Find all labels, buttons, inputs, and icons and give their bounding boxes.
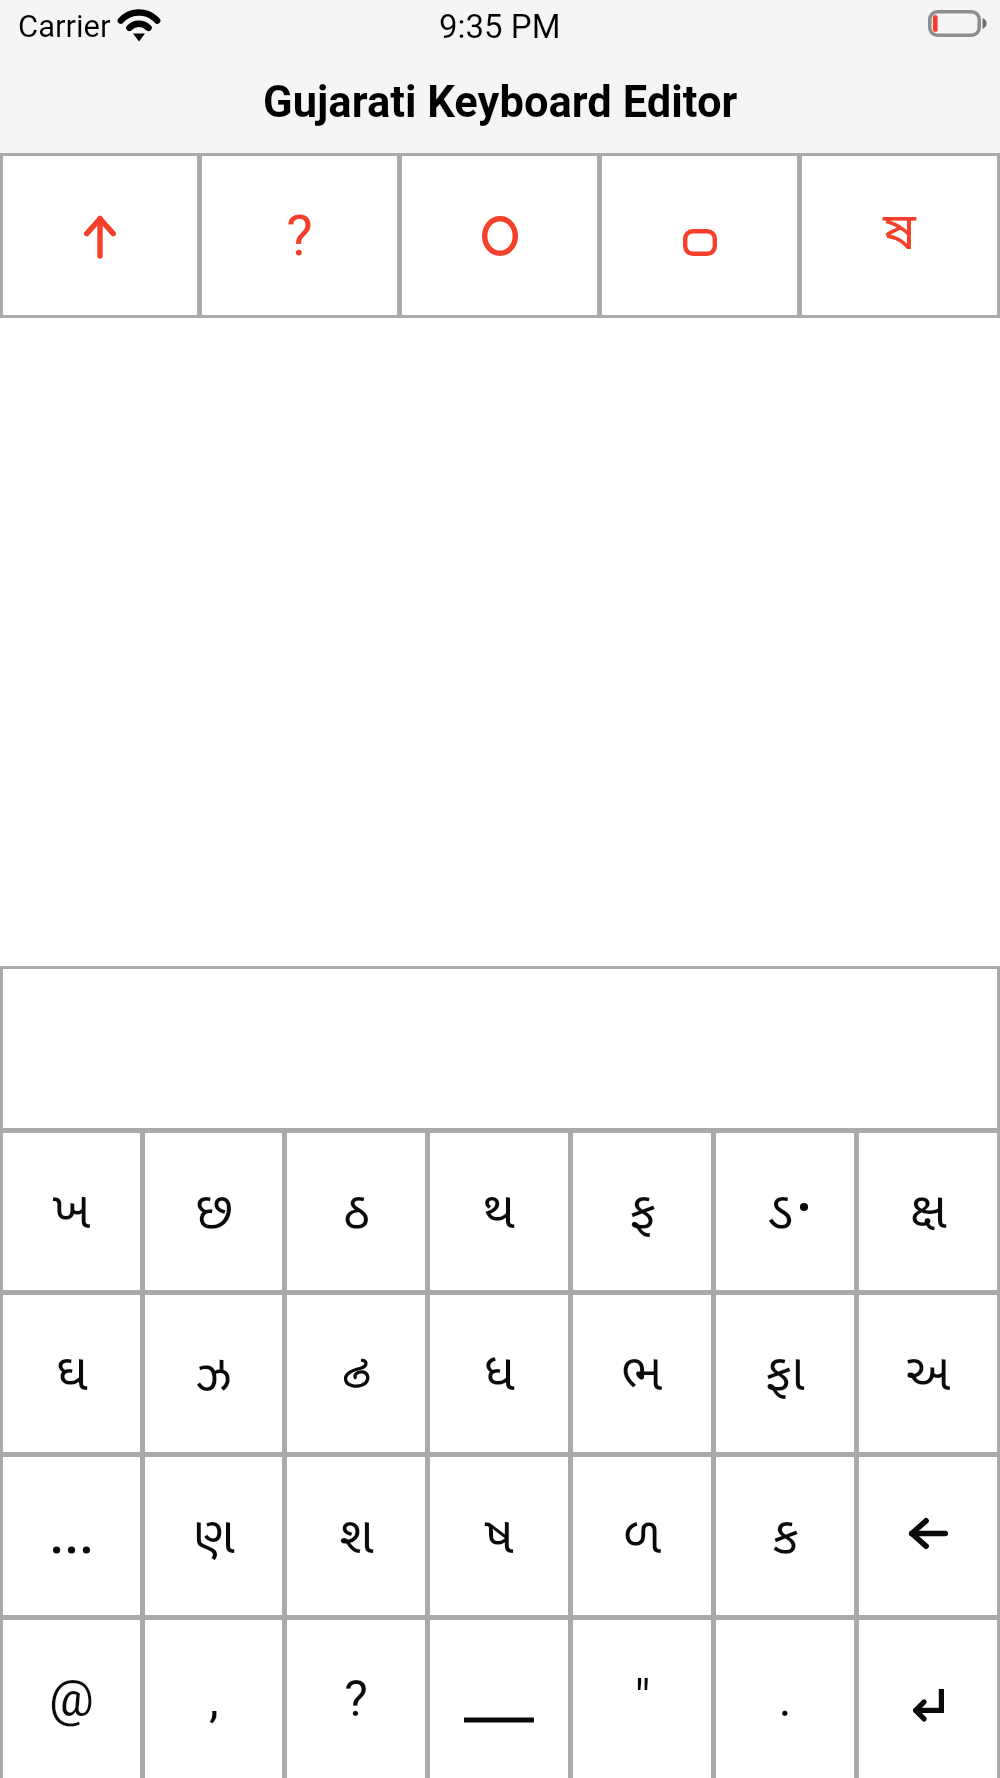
- staticText: ળ: [623, 1498, 662, 1567]
- staticText: ક: [772, 1498, 799, 1567]
- staticText: ": [634, 1670, 651, 1729]
- button[interactable]: Letter da: [716, 1133, 854, 1290]
- staticText: ,: [209, 1670, 219, 1729]
- staticText: ?: [286, 203, 313, 269]
- button[interactable]: Question mark: [202, 156, 397, 315]
- staticText: ણ: [193, 1498, 235, 1567]
- staticText: ધ: [484, 1335, 515, 1404]
- button[interactable]: ,: [145, 1620, 282, 1778]
- button[interactable]: ફા: [716, 1295, 854, 1452]
- button[interactable]: Circle: [402, 156, 597, 315]
- button[interactable]: શ: [287, 1457, 425, 1615]
- button[interactable]: Space: [430, 1620, 568, 1778]
- button[interactable]: ષ: [430, 1457, 568, 1615]
- staticText: ફા: [765, 1335, 805, 1404]
- button[interactable]: Letter nga: [287, 1295, 425, 1452]
- button[interactable]: ણ: [145, 1457, 282, 1615]
- button[interactable]: ભ: [573, 1295, 711, 1452]
- button[interactable]: ઘ: [3, 1295, 140, 1452]
- button[interactable]: ક્ષ: [859, 1133, 997, 1290]
- staticText: છ: [195, 1173, 233, 1242]
- staticText: @: [49, 1670, 94, 1729]
- staticText: ખ: [52, 1173, 91, 1242]
- staticText: ભ: [621, 1335, 663, 1404]
- staticText: Carrier: [18, 8, 111, 44]
- staticText: અ: [905, 1335, 951, 1404]
- button[interactable]: More: [3, 1457, 140, 1615]
- button[interactable]: ઝ: [145, 1295, 282, 1452]
- button[interactable]: ધ: [430, 1295, 568, 1452]
- button[interactable]: થ: [430, 1133, 568, 1290]
- staticText: ?: [344, 1670, 368, 1729]
- staticText: 9:35 PM: [439, 7, 561, 46]
- button[interactable]: ક: [716, 1457, 854, 1615]
- button[interactable]: ખ: [3, 1133, 140, 1290]
- button[interactable]: .: [716, 1620, 854, 1778]
- staticText: થ: [483, 1173, 515, 1242]
- staticText: .: [778, 1670, 792, 1729]
- button[interactable]: ળ: [573, 1457, 711, 1615]
- staticText: Gujarati Keyboard Editor: [263, 77, 738, 128]
- staticText: ક્ષ: [910, 1173, 947, 1242]
- staticText: ઝ: [196, 1335, 232, 1404]
- button[interactable]: Letter sha: [802, 156, 997, 315]
- staticText: ઘ: [56, 1335, 88, 1404]
- button[interactable]: ફ: [573, 1133, 711, 1290]
- button[interactable]: ": [573, 1620, 711, 1778]
- button[interactable]: છ: [145, 1133, 282, 1290]
- button[interactable]: @: [3, 1620, 140, 1778]
- button[interactable]: ?: [287, 1620, 425, 1778]
- button[interactable]: ઠ: [287, 1133, 425, 1290]
- button[interactable]: અ: [859, 1295, 997, 1452]
- staticText: ફ: [629, 1173, 656, 1242]
- button[interactable]: Shift: [3, 156, 197, 315]
- staticText: ষ: [883, 201, 916, 270]
- staticText: ડ: [768, 1173, 793, 1242]
- button[interactable]: Return: [859, 1620, 997, 1778]
- button[interactable]: Rounded rectangle: [602, 156, 797, 315]
- staticText: શ: [339, 1498, 374, 1567]
- staticText: ષ: [484, 1498, 514, 1567]
- staticText: ઠ: [343, 1173, 370, 1242]
- button[interactable]: Backspace: [859, 1457, 997, 1615]
